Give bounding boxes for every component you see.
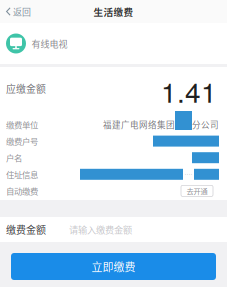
button[interactable]: 去开通: [181, 185, 213, 196]
staticText: 福建广电网络集团: [103, 118, 175, 131]
staticText: 去开通: [186, 186, 207, 196]
staticText: 缴费单位: [6, 118, 38, 131]
staticText: 分公司: [192, 118, 219, 131]
staticText: 返回: [13, 5, 31, 18]
button[interactable]: 立即缴费: [11, 253, 216, 280]
staticText: 请输入缴费金额: [69, 223, 132, 236]
staticText: 1.41: [161, 70, 217, 111]
staticText: 立即缴费: [91, 259, 135, 274]
staticText: 生活缴费: [93, 4, 133, 18]
staticText: 自动缴费: [6, 185, 38, 197]
button[interactable]: 返回: [0, 0, 40, 23]
staticText: ····: [184, 170, 192, 178]
staticText: 有线电视: [31, 37, 67, 50]
staticText: 缴费户号: [6, 135, 38, 147]
staticText: 户名: [6, 152, 22, 164]
staticText: 缴费金额: [6, 222, 46, 237]
staticText: 应缴金额: [6, 81, 46, 96]
staticText: 住址信息: [6, 168, 38, 180]
